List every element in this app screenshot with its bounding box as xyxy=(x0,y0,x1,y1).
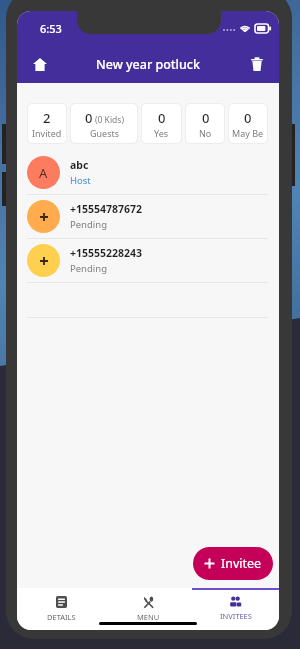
staticText: 6:53 xyxy=(40,21,62,36)
staticText: Pending xyxy=(70,262,107,275)
button[interactable]: 0 xyxy=(142,104,181,143)
staticText: New year potluck xyxy=(96,56,200,73)
staticText: Invited xyxy=(32,127,62,139)
staticText: Yes xyxy=(154,127,169,139)
staticText: 0 xyxy=(158,109,166,127)
staticText: Invitee xyxy=(221,555,262,572)
staticText: DETAILS xyxy=(47,612,76,622)
staticText: Guests xyxy=(90,127,120,139)
button[interactable]: 2 xyxy=(28,104,66,143)
staticText: MENU xyxy=(137,612,160,622)
staticText: +15555228243 xyxy=(70,246,143,260)
staticText: abc xyxy=(70,158,89,172)
staticText: No xyxy=(199,127,212,139)
staticText: +15554787672 xyxy=(70,202,143,216)
staticText: 2 xyxy=(43,109,51,127)
button[interactable]: +15554787672 xyxy=(27,195,268,239)
button[interactable]: Invitee xyxy=(193,547,273,580)
staticText: Host xyxy=(70,174,91,187)
button[interactable]: 0 xyxy=(229,104,267,143)
button[interactable]: +15555228243 xyxy=(27,239,268,283)
button[interactable]: INVITEES xyxy=(192,588,279,630)
staticText: 0 xyxy=(202,109,210,127)
staticText: 0 xyxy=(85,109,93,127)
button[interactable]: 0 xyxy=(71,104,137,143)
staticText: (0 Kids) xyxy=(95,114,124,126)
button[interactable]: DETAILS xyxy=(17,588,105,630)
button[interactable]: A xyxy=(27,151,268,195)
staticText: May Be xyxy=(232,127,264,139)
button[interactable]: Delete xyxy=(244,51,270,77)
staticText: 0 xyxy=(244,109,252,127)
staticText: Pending xyxy=(70,218,107,231)
button[interactable]: Home xyxy=(27,51,53,77)
button[interactable]: 0 xyxy=(186,104,224,143)
button[interactable]: MENU xyxy=(105,588,192,630)
staticText: INVITEES xyxy=(220,611,252,621)
staticText: A xyxy=(39,164,48,182)
